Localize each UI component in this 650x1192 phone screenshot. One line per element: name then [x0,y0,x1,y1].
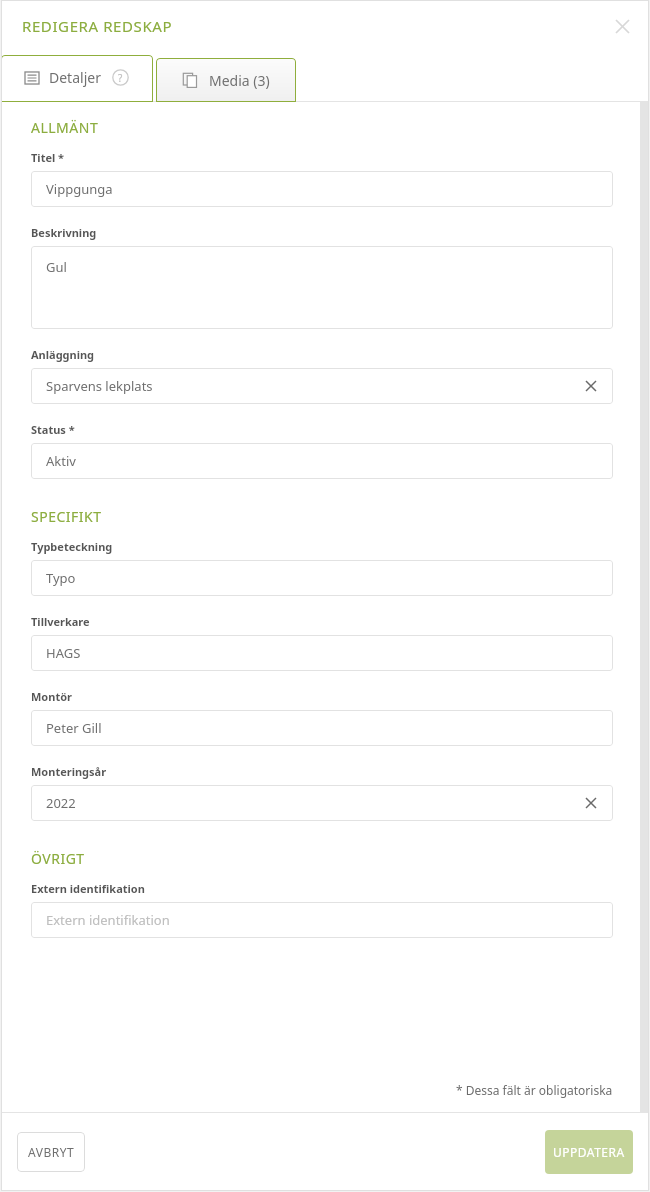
staticText: Anläggning [31,347,95,362]
button[interactable]: Typo [31,560,613,596]
staticText: ÖVRIGT [31,849,85,868]
staticText: Tillverkare [31,614,90,629]
staticText: Typo [46,569,76,587]
staticText: Montör [31,689,72,704]
staticText: * Dessa fält är obligatoriska [456,1082,613,1098]
staticText: Beskrivning [31,225,97,240]
staticText: UPPDATERA [553,1144,625,1160]
staticText: ALLMÄNT [31,118,99,137]
button[interactable]: Peter Gill [31,710,613,746]
button[interactable]: Rensa [581,793,601,813]
staticText: Extern identifikation [31,881,145,896]
staticText: Typbeteckning [31,539,113,554]
staticText: 2022 [46,794,76,812]
button[interactable]: HAGS [31,635,613,671]
button[interactable]: Stäng [609,13,635,39]
button[interactable]: Gul [31,246,613,329]
staticText: AVBRYT [28,1144,75,1160]
staticText: Detaljer [49,68,101,87]
button[interactable]: 2022 [31,785,613,821]
button[interactable]: Rensa [581,376,601,396]
staticText: Titel * [31,150,65,165]
button[interactable]: Detaljer [1,55,153,102]
staticText: ? [118,71,123,85]
button[interactable]: Aktiv [31,443,613,479]
staticText: Monteringsår [31,764,107,779]
staticText: SPECIFIKT [31,507,102,526]
staticText: REDIGERA REDSKAP [22,16,173,36]
button[interactable]: UPPDATERA [545,1130,633,1174]
button[interactable]: Extern identifikation [31,902,613,938]
button[interactable]: Sparvens lekplats [31,368,613,404]
button[interactable]: AVBRYT [17,1132,85,1172]
button[interactable]: Vippgunga [31,171,613,207]
staticText: HAGS [46,644,81,662]
staticText: Peter Gill [46,719,102,737]
staticText: Media (3) [209,71,270,90]
staticText: Status * [31,422,75,437]
staticText: Sparvens lekplats [46,377,153,395]
button[interactable]: Media (3) [156,58,296,102]
staticText: Gul [46,258,67,276]
staticText: Extern identifikation [46,911,170,929]
staticText: Vippgunga [46,180,113,198]
staticText: Aktiv [46,452,76,470]
button[interactable]: Hjälp [112,69,129,86]
